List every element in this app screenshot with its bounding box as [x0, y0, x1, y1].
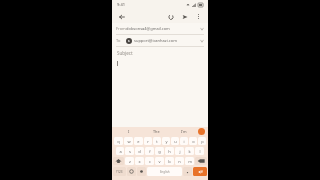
staticText: I'm: [181, 129, 187, 134]
staticText: h: [168, 149, 171, 154]
button[interactable]: g: [155, 147, 164, 155]
staticText: b: [168, 159, 171, 164]
staticText: c: [149, 159, 151, 164]
staticText: j: [179, 149, 181, 154]
button[interactable]: n: [175, 157, 184, 165]
staticText: To: [116, 38, 126, 43]
button[interactable]: z: [125, 157, 134, 165]
staticText: d: [138, 149, 141, 154]
button[interactable]: [112, 59, 208, 127]
button[interactable]: Enter: [193, 167, 207, 176]
button[interactable]: w: [124, 137, 133, 145]
button[interactable]: q: [114, 137, 123, 145]
button[interactable]: ?123: [113, 167, 126, 176]
staticText: u: [174, 139, 177, 144]
button[interactable]: p: [198, 137, 206, 145]
button[interactable]: i: [180, 137, 188, 145]
button[interactable]: d: [135, 147, 144, 155]
button[interactable]: l: [195, 147, 204, 155]
staticText: x: [138, 159, 141, 164]
button[interactable]: From: [112, 23, 208, 34]
staticText: dobsonsa4@gmail.com: [126, 26, 200, 31]
button[interactable]: k: [185, 147, 194, 155]
staticText: I: [128, 129, 130, 134]
button[interactable]: I'm: [170, 127, 198, 136]
button[interactable]: To: [112, 35, 208, 46]
staticText: support@icanhazi.com: [134, 38, 200, 43]
button[interactable]: x: [135, 157, 144, 165]
staticText: e: [137, 139, 140, 144]
staticText: From: [116, 26, 126, 31]
staticText: t: [156, 139, 158, 144]
button[interactable]: Backspace: [195, 157, 207, 165]
button[interactable]: c: [145, 157, 154, 165]
staticText: s: [128, 39, 130, 43]
button[interactable]: y: [162, 137, 170, 145]
button[interactable]: More options: [193, 11, 204, 22]
button[interactable]: Shift: [113, 157, 124, 165]
staticText: g: [158, 149, 161, 154]
staticText: w: [127, 139, 131, 144]
button[interactable]: r: [144, 137, 152, 145]
staticText: v: [158, 159, 161, 164]
button[interactable]: m: [185, 157, 194, 165]
staticText: f: [149, 149, 151, 154]
staticText: i: [183, 139, 185, 144]
staticText: k: [188, 149, 191, 154]
button[interactable]: Settings: [137, 167, 146, 176]
staticText: z: [129, 159, 131, 164]
button[interactable]: Attach file: [165, 11, 176, 22]
button[interactable]: b: [165, 157, 174, 165]
staticText: The: [153, 129, 160, 134]
button[interactable]: u: [171, 137, 179, 145]
staticText: 9:41: [117, 2, 125, 7]
button[interactable]: Period: [183, 167, 192, 176]
button[interactable]: s: [125, 147, 134, 155]
button[interactable]: I: [115, 127, 142, 136]
staticText: ?123: [116, 170, 123, 174]
button[interactable]: h: [165, 147, 174, 155]
staticText: s: [129, 149, 131, 154]
staticText: m: [188, 159, 192, 164]
button[interactable]: Space: [147, 167, 182, 176]
button[interactable]: j: [175, 147, 184, 155]
button[interactable]: Back: [116, 11, 127, 22]
staticText: English: [160, 170, 170, 174]
button[interactable]: Emoji: [127, 167, 136, 176]
button[interactable]: The: [142, 127, 170, 136]
button[interactable]: Send: [179, 11, 190, 22]
staticText: r: [147, 139, 149, 144]
button[interactable]: Voice input: [198, 128, 205, 135]
staticText: o: [192, 139, 195, 144]
staticText: n: [178, 159, 181, 164]
button[interactable]: Subject: [112, 47, 208, 59]
staticText: a: [119, 149, 122, 154]
button[interactable]: v: [155, 157, 164, 165]
staticText: q: [117, 139, 120, 144]
staticText: l: [199, 149, 201, 154]
button[interactable]: e: [134, 137, 143, 145]
staticText: y: [165, 139, 168, 144]
staticText: p: [201, 139, 204, 144]
button[interactable]: o: [189, 137, 197, 145]
button[interactable]: a: [116, 147, 124, 155]
staticText: Subject: [117, 50, 133, 56]
button[interactable]: t: [153, 137, 161, 145]
button[interactable]: f: [145, 147, 154, 155]
